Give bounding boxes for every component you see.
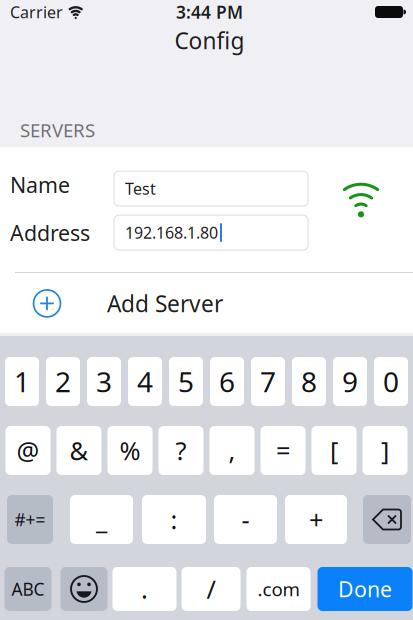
- staticText: Name: [10, 170, 70, 199]
- staticText: _: [96, 503, 107, 536]
- staticText: %: [119, 434, 140, 467]
- button[interactable]: ]: [362, 426, 407, 475]
- staticText: &: [69, 434, 88, 467]
- button[interactable]: Delete: [363, 495, 411, 544]
- button[interactable]: 1: [5, 357, 39, 406]
- button[interactable]: 5: [169, 357, 203, 406]
- button[interactable]: &: [56, 426, 101, 475]
- staticText: :: [170, 503, 177, 536]
- button[interactable]: %: [107, 426, 152, 475]
- staticText: ]: [381, 434, 389, 467]
- staticText: 0: [383, 363, 399, 400]
- staticText: #+=: [14, 508, 45, 531]
- staticText: SERVERS: [20, 118, 95, 142]
- staticText: 5: [178, 363, 194, 400]
- button[interactable]: [: [311, 426, 356, 475]
- button[interactable]: +: [285, 495, 347, 544]
- button[interactable]: @: [5, 426, 50, 475]
- button[interactable]: 3: [87, 357, 121, 406]
- staticText: =: [276, 434, 290, 467]
- staticText: 2: [55, 363, 71, 400]
- staticText: 3:44 PM: [176, 0, 243, 23]
- button[interactable]: #+=: [7, 495, 53, 544]
- staticText: ?: [175, 434, 186, 467]
- staticText: .com: [257, 577, 299, 601]
- staticText: +: [309, 503, 323, 536]
- button[interactable]: ,: [209, 426, 254, 475]
- staticText: 192.168.1.80: [125, 222, 218, 243]
- staticText: @: [16, 434, 39, 467]
- button[interactable]: :: [142, 495, 206, 544]
- staticText: Carrier: [10, 1, 63, 23]
- button[interactable]: 9: [333, 357, 367, 406]
- staticText: 7: [260, 363, 276, 400]
- staticText: -: [241, 503, 249, 536]
- button[interactable]: ABC: [4, 567, 51, 611]
- staticText: .: [141, 572, 148, 606]
- staticText: ABC: [11, 577, 44, 600]
- button[interactable]: 7: [251, 357, 285, 406]
- button[interactable]: 0: [374, 357, 408, 406]
- button[interactable]: =: [260, 426, 305, 475]
- button[interactable]: Done: [317, 567, 412, 611]
- staticText: [: [330, 434, 338, 467]
- button[interactable]: 8: [292, 357, 326, 406]
- button[interactable]: -: [214, 495, 277, 544]
- staticText: 1: [14, 363, 30, 400]
- staticText: 8: [301, 363, 317, 400]
- staticText: Add Server: [107, 288, 223, 318]
- staticText: Config: [174, 25, 244, 55]
- staticText: Done: [338, 575, 392, 603]
- staticText: Address: [10, 218, 90, 247]
- staticText: 4: [137, 363, 153, 400]
- staticText: 6: [219, 363, 235, 400]
- button[interactable]: /: [181, 567, 240, 611]
- staticText: ,: [228, 434, 235, 467]
- button[interactable]: ?: [158, 426, 203, 475]
- button[interactable]: .: [112, 567, 176, 611]
- button[interactable]: Emoji: [60, 567, 107, 611]
- staticText: 9: [342, 363, 358, 400]
- staticText: 3: [96, 363, 112, 400]
- button[interactable]: 6: [210, 357, 244, 406]
- staticText: /: [206, 572, 215, 606]
- button[interactable]: 4: [128, 357, 162, 406]
- button[interactable]: .com: [246, 567, 310, 611]
- button[interactable]: Add Server: [0, 273, 413, 334]
- staticText: Test: [125, 178, 156, 199]
- button[interactable]: _: [70, 495, 133, 544]
- button[interactable]: 2: [46, 357, 80, 406]
